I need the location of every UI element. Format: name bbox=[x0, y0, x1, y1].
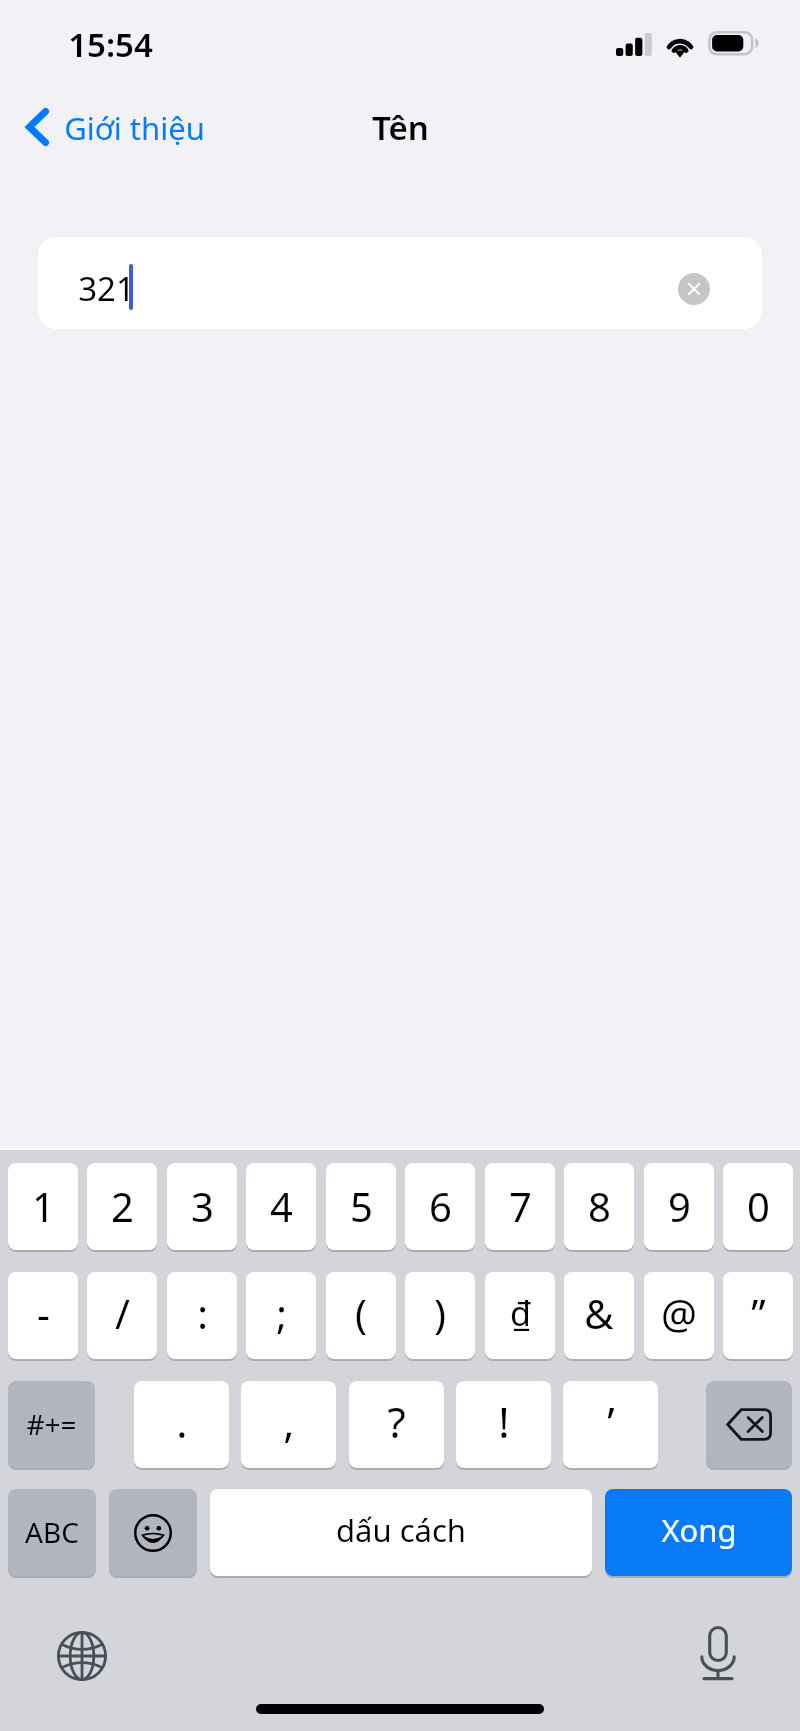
button[interactable]: 6 bbox=[405, 1163, 475, 1250]
staticText: 321 bbox=[78, 266, 135, 311]
staticText: 2 bbox=[111, 1179, 134, 1233]
button[interactable]: 9 bbox=[644, 1163, 714, 1250]
staticText: ; bbox=[276, 1286, 287, 1340]
staticText: 1 bbox=[32, 1179, 55, 1233]
button[interactable]: 8 bbox=[564, 1163, 634, 1250]
button[interactable]: 1 bbox=[8, 1163, 78, 1250]
button[interactable]: / bbox=[87, 1272, 157, 1359]
button[interactable]: ” bbox=[723, 1272, 793, 1359]
staticText: / bbox=[115, 1286, 130, 1340]
staticText: & bbox=[584, 1286, 614, 1340]
staticText: dấu cách bbox=[336, 1509, 466, 1551]
button[interactable]: . bbox=[134, 1381, 229, 1468]
staticText: : bbox=[197, 1286, 208, 1340]
staticText: @ bbox=[661, 1286, 697, 1340]
button[interactable]: , bbox=[241, 1381, 336, 1468]
staticText: 6 bbox=[429, 1179, 452, 1233]
staticText: . bbox=[176, 1393, 188, 1450]
button[interactable]: 5 bbox=[326, 1163, 396, 1250]
staticText: - bbox=[37, 1286, 50, 1340]
button[interactable]: - bbox=[8, 1272, 78, 1359]
button[interactable]: Dictation bbox=[692, 1623, 744, 1685]
staticText: #+= bbox=[26, 1405, 77, 1443]
staticText: Xong bbox=[661, 1509, 737, 1551]
staticText: ) bbox=[434, 1286, 446, 1340]
staticText: ₫ bbox=[510, 1290, 531, 1336]
button[interactable]: 7 bbox=[485, 1163, 555, 1250]
button[interactable]: Clear text bbox=[678, 273, 710, 305]
staticText: 0 bbox=[747, 1179, 770, 1233]
button[interactable]: ’ bbox=[563, 1381, 658, 1468]
button[interactable]: 321 bbox=[38, 237, 762, 329]
button[interactable]: ABC bbox=[8, 1489, 96, 1576]
button[interactable]: ₫ bbox=[485, 1272, 555, 1359]
staticText: 8 bbox=[588, 1179, 611, 1233]
button[interactable]: 0 bbox=[723, 1163, 793, 1250]
button[interactable]: dấu cách bbox=[210, 1489, 592, 1576]
button[interactable]: Xong bbox=[605, 1489, 792, 1576]
staticText: 5 bbox=[350, 1179, 373, 1233]
button[interactable]: Emoji bbox=[109, 1489, 197, 1576]
staticText: Tên bbox=[372, 105, 429, 150]
button[interactable]: Change keyboard bbox=[56, 1630, 108, 1682]
staticText: ? bbox=[387, 1393, 406, 1450]
staticText: 9 bbox=[668, 1179, 691, 1233]
staticText: ABC bbox=[25, 1513, 79, 1551]
staticText: Giới thiệu bbox=[64, 107, 205, 149]
staticText: 3 bbox=[191, 1179, 214, 1233]
staticText: 15:54 bbox=[68, 22, 153, 67]
staticText: 4 bbox=[270, 1179, 293, 1233]
button[interactable]: & bbox=[564, 1272, 634, 1359]
button[interactable]: 2 bbox=[87, 1163, 157, 1250]
staticText: ” bbox=[751, 1286, 766, 1340]
button[interactable]: #+= bbox=[8, 1381, 95, 1468]
button[interactable]: : bbox=[167, 1272, 237, 1359]
button[interactable]: ; bbox=[246, 1272, 316, 1359]
button[interactable]: ( bbox=[326, 1272, 396, 1359]
staticText: 7 bbox=[509, 1179, 532, 1233]
button[interactable]: ? bbox=[349, 1381, 444, 1468]
button[interactable]: 3 bbox=[167, 1163, 237, 1250]
button[interactable]: Backspace bbox=[706, 1381, 792, 1468]
button[interactable]: ) bbox=[405, 1272, 475, 1359]
button[interactable]: @ bbox=[644, 1272, 714, 1359]
button[interactable]: ! bbox=[456, 1381, 551, 1468]
staticText: ( bbox=[355, 1286, 367, 1340]
staticText: , bbox=[283, 1393, 295, 1450]
staticText: ’ bbox=[607, 1393, 615, 1450]
staticText: ! bbox=[498, 1393, 510, 1450]
button[interactable]: Giới thiệu bbox=[18, 100, 213, 154]
button[interactable]: 4 bbox=[246, 1163, 316, 1250]
